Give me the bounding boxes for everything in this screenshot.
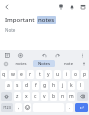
button[interactable]: Back	[0, 0, 13, 13]
staticText: b	[52, 93, 56, 100]
button[interactable]: Archive	[77, 1, 88, 12]
button[interactable]: s	[14, 81, 21, 90]
staticText: a	[7, 82, 10, 89]
button[interactable]: f	[32, 81, 39, 90]
button[interactable]: z	[14, 92, 21, 101]
staticText: o	[74, 71, 78, 78]
staticText: d	[25, 82, 29, 89]
staticText: c	[34, 93, 37, 100]
button[interactable]: w	[9, 70, 16, 79]
button[interactable]: notes	[10, 60, 31, 67]
button[interactable]: j	[59, 81, 66, 90]
button[interactable]: Shift	[1, 92, 12, 101]
button[interactable]: t	[36, 70, 43, 79]
button[interactable]: h	[50, 81, 57, 90]
staticText: h	[52, 82, 56, 89]
staticText: k	[70, 82, 73, 89]
staticText: r	[29, 71, 32, 78]
button[interactable]: ,	[15, 103, 22, 112]
staticText: Important	[5, 16, 37, 24]
staticText: q	[2, 71, 6, 78]
button[interactable]: r	[27, 70, 34, 79]
button[interactable]: d	[23, 81, 30, 90]
button[interactable]: c	[32, 92, 39, 101]
staticText: s	[16, 82, 19, 89]
staticText: u	[56, 71, 60, 78]
staticText: g	[43, 82, 47, 89]
button[interactable]: Reminder	[66, 1, 77, 12]
button[interactable]: n	[59, 92, 66, 101]
staticText: ?123	[3, 105, 11, 110]
staticText: notes	[38, 16, 55, 24]
staticText: x	[25, 93, 28, 100]
button[interactable]: a	[5, 81, 12, 90]
staticText: ,	[18, 104, 20, 111]
button[interactable]: Voice input	[80, 60, 87, 67]
button[interactable]: i	[63, 70, 70, 79]
button[interactable]: g	[41, 81, 48, 90]
staticText: .	[69, 104, 71, 111]
staticText: n	[61, 93, 65, 100]
staticText: m	[69, 93, 74, 100]
button[interactable]: ?123	[1, 103, 13, 112]
button[interactable]: b	[50, 92, 57, 101]
button[interactable]: l	[77, 81, 84, 90]
staticText: t	[39, 71, 41, 78]
staticText: note	[64, 61, 73, 67]
button[interactable]: m	[68, 92, 75, 101]
staticText: Notes	[38, 61, 50, 67]
staticText: f	[35, 82, 37, 89]
button[interactable]: q	[1, 70, 7, 79]
button[interactable]: More options	[78, 51, 86, 59]
button[interactable]: x	[23, 92, 30, 101]
staticText: notes	[15, 61, 27, 67]
staticText: p	[83, 71, 87, 78]
button[interactable]: p	[81, 70, 88, 79]
staticText: Note	[5, 27, 16, 33]
staticText: y	[47, 71, 50, 78]
staticText: e	[20, 71, 23, 78]
staticText: i	[66, 71, 68, 78]
button[interactable]: u	[54, 70, 61, 79]
button[interactable]: Format	[3, 51, 11, 59]
button[interactable]: k	[68, 81, 75, 90]
staticText: v	[43, 93, 46, 100]
button[interactable]: e	[18, 70, 25, 79]
staticText: l	[80, 82, 82, 89]
button[interactable]: Expand	[2, 60, 9, 67]
button[interactable]: Enter	[75, 103, 88, 112]
staticText: z	[16, 93, 19, 100]
staticText: w	[11, 71, 15, 78]
button[interactable]: Redo	[53, 51, 61, 59]
button[interactable]: Emoji	[24, 103, 31, 112]
staticText: j	[62, 82, 64, 89]
button[interactable]: Add	[16, 51, 24, 59]
button[interactable]: Undo	[40, 51, 48, 59]
button[interactable]: Notes	[33, 60, 55, 67]
button[interactable]: note	[57, 60, 79, 67]
button[interactable]: Pin	[55, 1, 66, 12]
button[interactable]: v	[41, 92, 48, 101]
button[interactable]: .	[66, 103, 73, 112]
button[interactable]: Backspace	[77, 92, 88, 101]
button[interactable]: y	[45, 70, 52, 79]
button[interactable]: o	[72, 70, 79, 79]
